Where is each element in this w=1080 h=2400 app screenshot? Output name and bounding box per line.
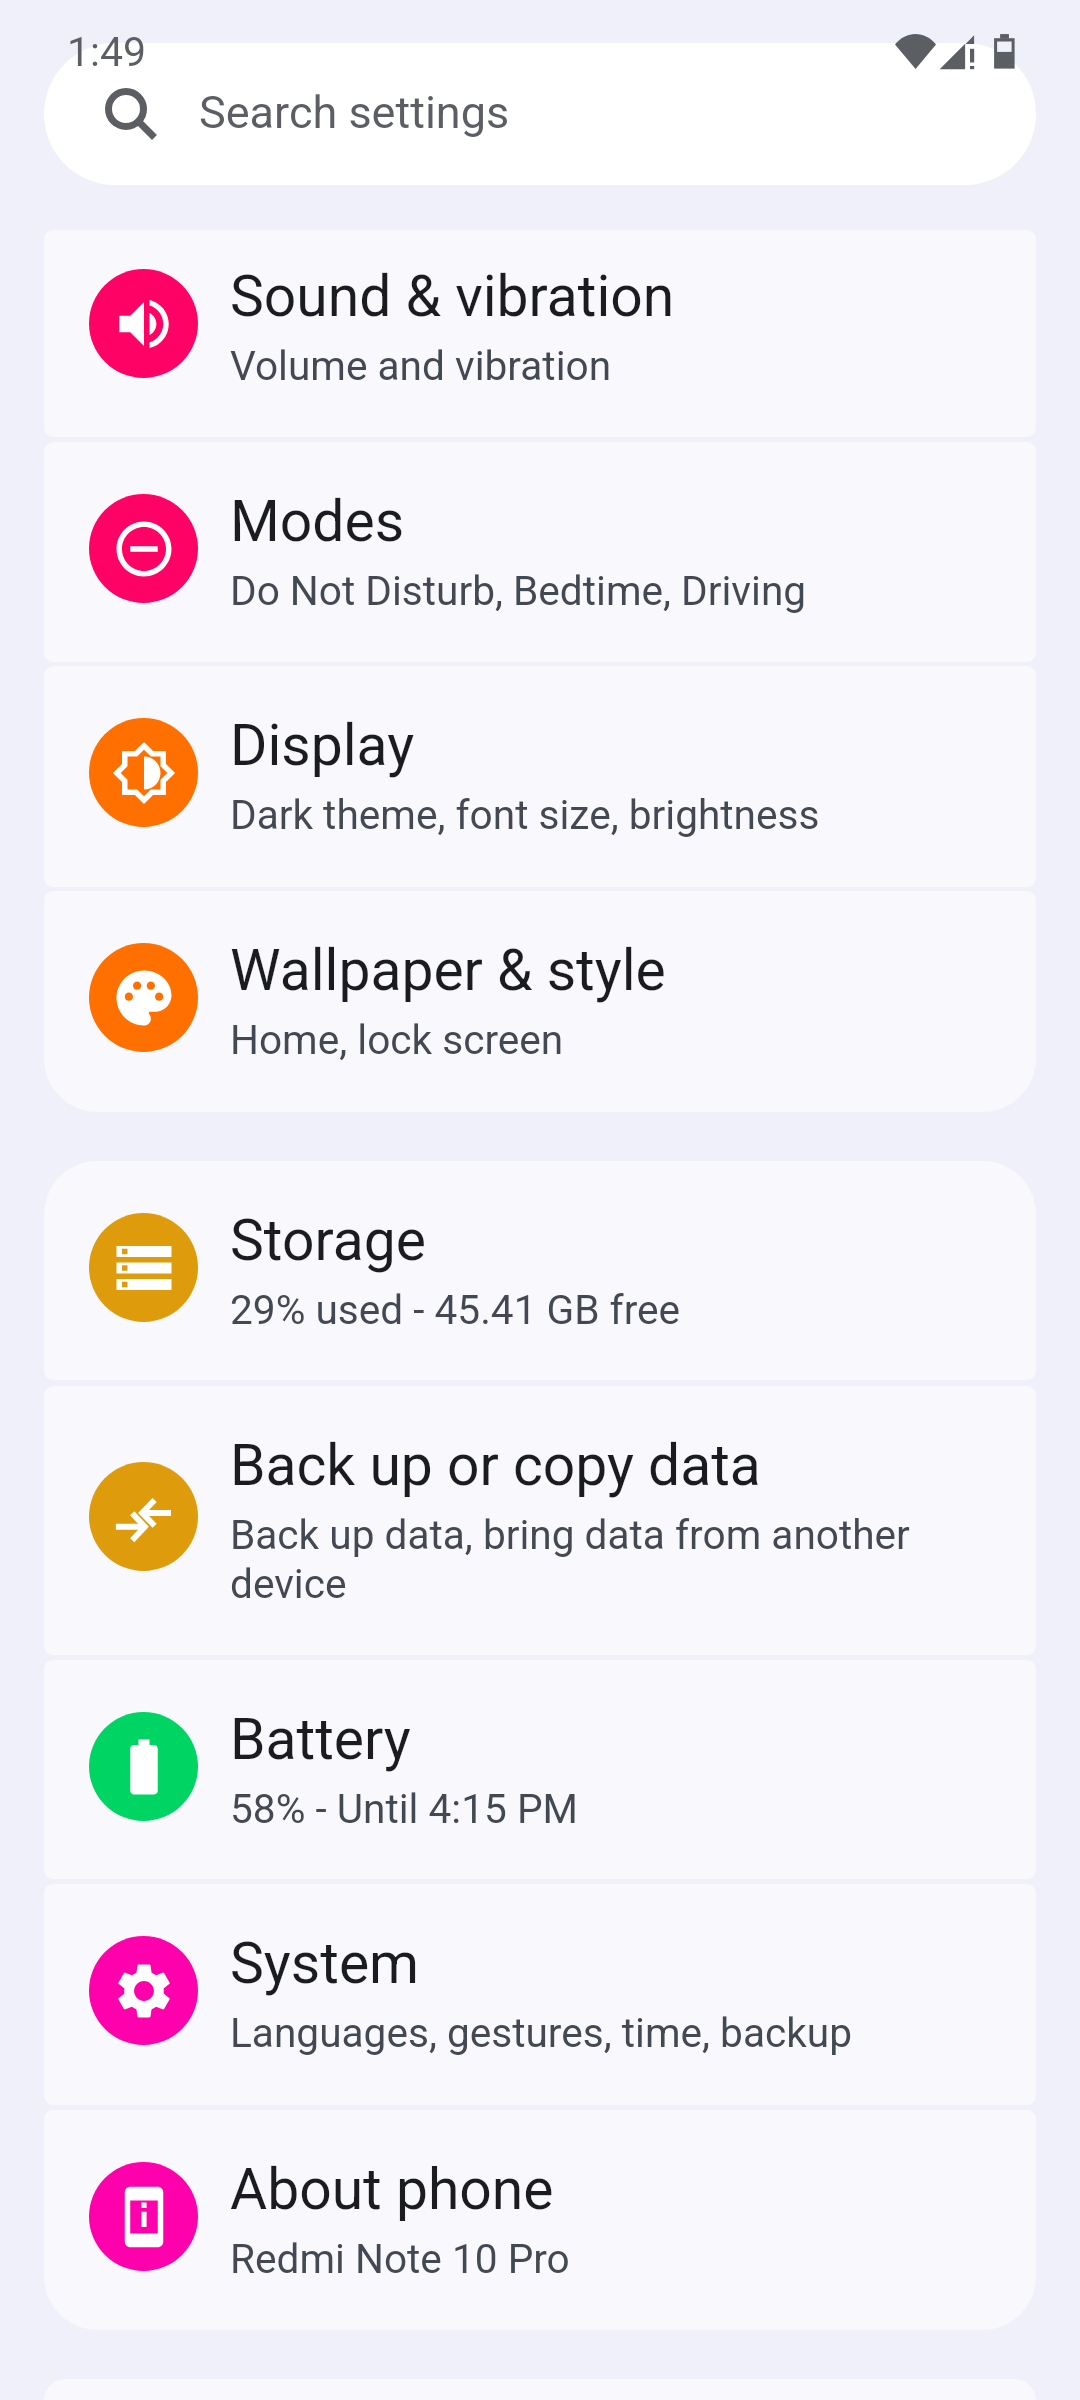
button[interactable]: Storage [44,1161,1036,1380]
staticText: Dark theme, font size, brightness [230,791,990,839]
staticText: About phone [230,2156,554,2223]
staticText: Back up or copy data [230,1432,761,1499]
staticText: Redmi Note 10 Pro [230,2235,990,2283]
button[interactable]: Sound & vibration [44,230,1036,437]
other: Network and battery status [890,30,1020,75]
staticText: Modes [230,488,405,555]
button[interactable]: Display [44,666,1036,887]
staticText: 1:49 [67,28,147,76]
button[interactable]: Back up or copy data [44,1386,1036,1655]
staticText: Volume and vibration [230,342,990,390]
staticText: Storage [230,1207,426,1274]
button[interactable]: Wallpaper & style [44,891,1036,1112]
staticText: Wallpaper & style [230,937,666,1004]
staticText: 29% used - 45.41 GB free [230,1286,990,1334]
staticText: Search settings [199,86,510,139]
staticText: System [230,1930,420,1997]
button[interactable]: System [44,1884,1036,2105]
other: Search [106,89,156,139]
button[interactable]: Modes [44,442,1036,662]
button[interactable]: Search [44,43,1036,185]
staticText: Home, lock screen [230,1016,990,1064]
staticText: Battery [230,1706,411,1773]
staticText: Back up data, bring data from another de… [230,1511,990,1608]
staticText: 58% - Until 4:15 PM [230,1785,990,1833]
staticText: Languages, gestures, time, backup [230,2009,990,2057]
staticText: Sound & vibration [230,263,675,330]
button[interactable]: Battery [44,1660,1036,1879]
button[interactable]: About phone [44,2110,1036,2330]
staticText: Display [230,712,415,779]
staticText: Do Not Disturb, Bedtime, Driving [230,567,990,615]
